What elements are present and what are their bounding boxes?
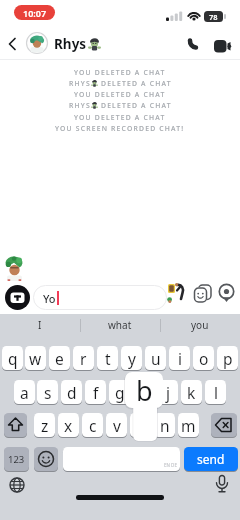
staticText: EN DE bbox=[164, 462, 177, 468]
button[interactable]: x bbox=[58, 413, 79, 437]
button[interactable] bbox=[4, 413, 27, 437]
button[interactable]: s bbox=[37, 380, 58, 404]
button[interactable]: a bbox=[14, 380, 35, 404]
staticText: b bbox=[136, 372, 153, 408]
button[interactable]: n bbox=[154, 413, 175, 437]
button[interactable]: f bbox=[85, 380, 106, 404]
staticText: YOU DELETED A CHAT bbox=[74, 113, 166, 122]
staticText: k bbox=[187, 382, 196, 403]
staticText: w bbox=[29, 348, 42, 369]
button[interactable]: b bbox=[125, 372, 163, 408]
staticText: f bbox=[93, 382, 99, 403]
button[interactable]: u bbox=[145, 346, 166, 370]
staticText: a bbox=[20, 382, 29, 403]
staticText: d bbox=[67, 382, 77, 403]
button[interactable] bbox=[193, 283, 214, 304]
button[interactable] bbox=[216, 282, 237, 303]
button[interactable]: g bbox=[109, 380, 130, 404]
staticText: RHYS bbox=[69, 79, 91, 88]
button[interactable]: p bbox=[217, 346, 238, 370]
staticText: v bbox=[113, 415, 121, 436]
staticText: p bbox=[223, 348, 233, 369]
button[interactable]: l bbox=[205, 380, 226, 404]
button[interactable]: k bbox=[181, 380, 202, 404]
staticText: 123 bbox=[8, 453, 25, 466]
button[interactable] bbox=[181, 34, 201, 54]
staticText: q bbox=[8, 348, 18, 369]
button[interactable]: i bbox=[169, 346, 190, 370]
button[interactable]: send bbox=[184, 447, 238, 471]
staticText: send bbox=[197, 451, 225, 467]
staticText: x bbox=[64, 415, 73, 436]
staticText: YOU DELETED A CHAT bbox=[74, 90, 166, 99]
button[interactable]: y bbox=[121, 346, 142, 370]
button[interactable]: b bbox=[130, 413, 151, 437]
staticText: j bbox=[166, 382, 170, 403]
staticText: i bbox=[178, 348, 182, 369]
button[interactable]: what bbox=[80, 317, 160, 333]
staticText: n bbox=[160, 415, 170, 436]
staticText: c bbox=[89, 415, 97, 436]
button[interactable]: I bbox=[0, 317, 80, 333]
button[interactable]: q bbox=[2, 346, 23, 370]
button[interactable]: o bbox=[193, 346, 214, 370]
button[interactable]: z bbox=[34, 413, 55, 437]
staticText: y bbox=[128, 348, 136, 369]
button[interactable]: r bbox=[73, 346, 94, 370]
button[interactable]: v bbox=[106, 413, 127, 437]
staticText: g bbox=[115, 382, 125, 403]
staticText: Yo bbox=[43, 291, 56, 306]
button[interactable]: EN DE bbox=[63, 447, 180, 471]
staticText: m bbox=[181, 415, 196, 436]
staticText: I bbox=[38, 318, 42, 332]
button[interactable]: c bbox=[82, 413, 103, 437]
staticText: DELETED A CHAT bbox=[98, 101, 172, 110]
button[interactable] bbox=[209, 35, 235, 55]
button[interactable]: you bbox=[160, 317, 240, 333]
staticText: o bbox=[199, 348, 209, 369]
staticText: RHYS bbox=[69, 101, 91, 110]
button[interactable]: d bbox=[61, 380, 82, 404]
button[interactable] bbox=[211, 413, 237, 437]
staticText: 78 bbox=[209, 12, 218, 22]
button[interactable]: w bbox=[25, 346, 46, 370]
button[interactable]: m bbox=[178, 413, 199, 437]
button[interactable]: Rhys bbox=[54, 35, 101, 53]
staticText: t bbox=[105, 348, 111, 369]
button[interactable] bbox=[5, 285, 30, 310]
staticText: z bbox=[41, 415, 49, 436]
staticText: s bbox=[44, 382, 52, 403]
button[interactable]: j bbox=[157, 380, 178, 404]
staticText: 10:07 bbox=[23, 7, 47, 19]
staticText: DELETED A CHAT bbox=[98, 79, 172, 88]
button[interactable]: 10:07 bbox=[14, 5, 55, 20]
staticText: u bbox=[151, 348, 161, 369]
button[interactable] bbox=[166, 281, 190, 305]
button[interactable] bbox=[8, 476, 26, 494]
staticText: YOU SCREEN RECORDED CHAT! bbox=[55, 124, 185, 133]
staticText: YOU DELETED A CHAT bbox=[74, 68, 166, 77]
staticText: what bbox=[108, 318, 132, 332]
button[interactable] bbox=[26, 32, 48, 54]
staticText: Rhys bbox=[54, 35, 87, 53]
button[interactable]: 123 bbox=[4, 447, 29, 471]
button[interactable] bbox=[34, 447, 58, 471]
button[interactable] bbox=[212, 474, 232, 494]
staticText: h bbox=[139, 382, 149, 403]
button[interactable]: t bbox=[97, 346, 118, 370]
button[interactable] bbox=[4, 34, 20, 54]
staticText: e bbox=[55, 348, 64, 369]
staticText: r bbox=[80, 348, 87, 369]
button[interactable]: Yo bbox=[33, 285, 167, 310]
button[interactable]: h bbox=[133, 380, 154, 404]
staticText: you bbox=[191, 318, 209, 332]
staticText: l bbox=[214, 382, 218, 403]
button[interactable]: e bbox=[49, 346, 70, 370]
